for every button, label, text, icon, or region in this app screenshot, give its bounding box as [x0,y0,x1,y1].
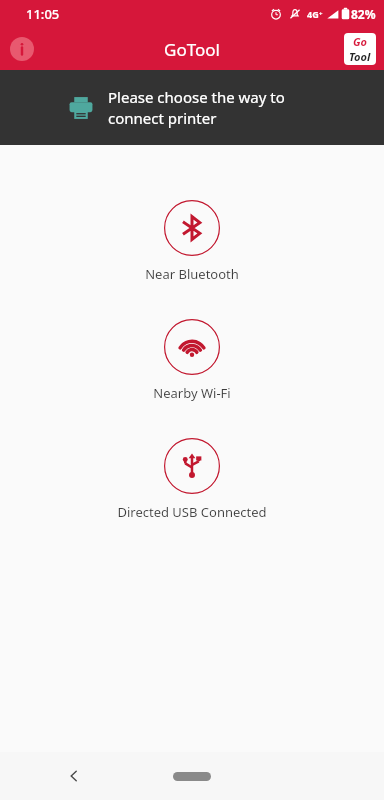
button[interactable]: Home [168,764,216,788]
staticText: Directed USB Connected [117,503,267,521]
staticText: 4G [307,8,319,20]
staticText: Tool [349,49,371,64]
staticText: GoTool [164,38,220,61]
staticText: Please choose the way to connect printer [108,87,285,129]
button[interactable]: Near Bluetooth [133,198,251,285]
button[interactable]: Directed USB Connected [105,436,279,523]
staticText: 11:05 [26,5,60,23]
staticText: 82% [351,6,376,22]
button[interactable]: Information [8,35,36,63]
staticText: Near Bluetooth [145,265,239,283]
staticText: + [319,10,323,18]
button[interactable]: GoTool logo [344,33,376,65]
button[interactable]: Nearby Wi-Fi [141,317,243,404]
staticText: Go [353,34,368,49]
button[interactable]: Back [58,760,90,792]
staticText: Nearby Wi-Fi [153,384,231,402]
